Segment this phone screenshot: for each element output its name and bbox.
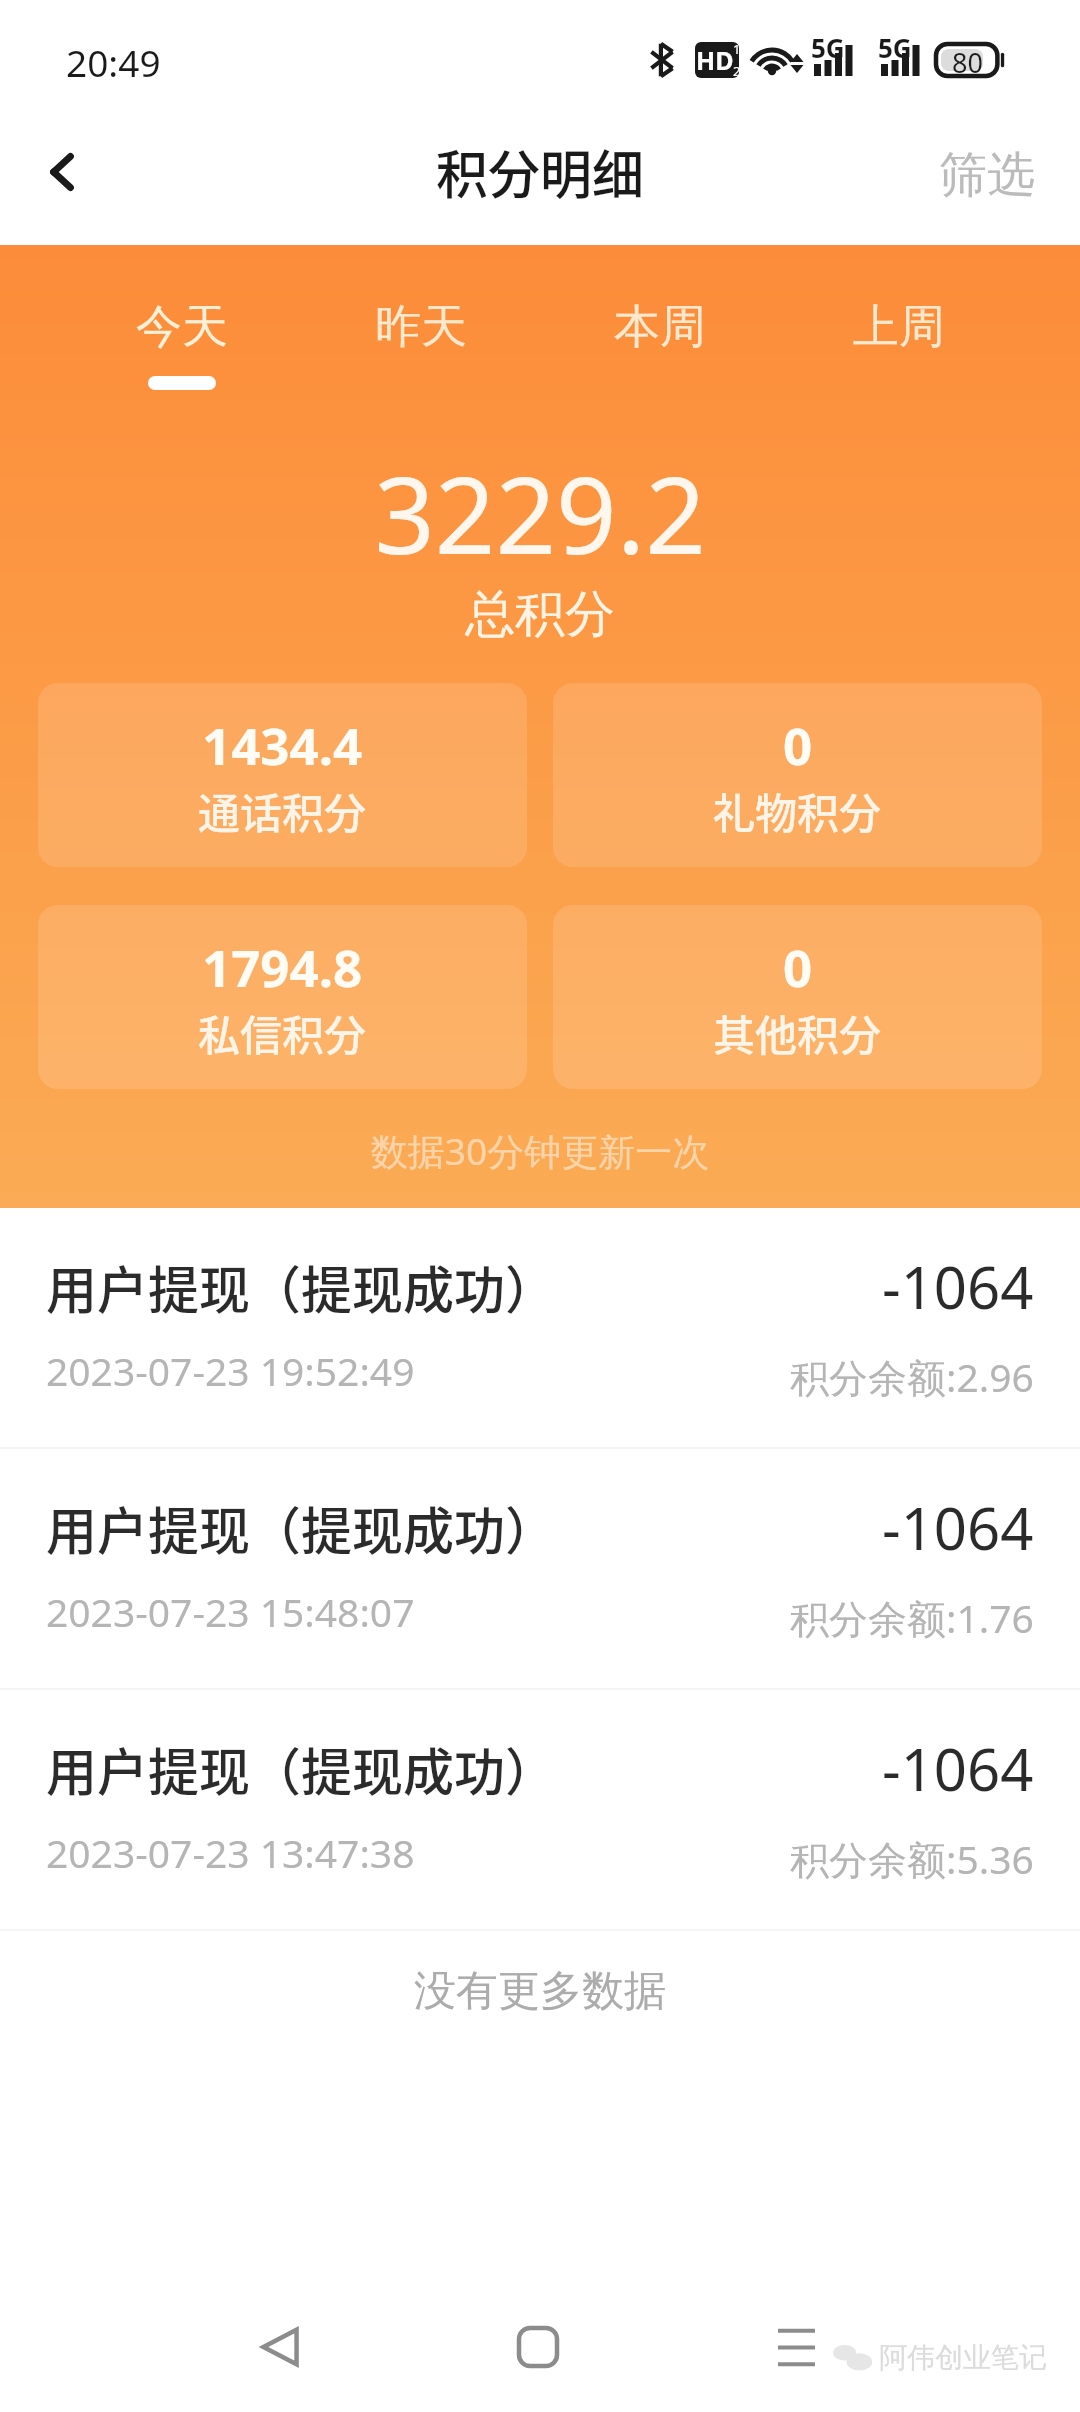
staticText: 2023-07-23 13:47:38 <box>46 1826 415 1879</box>
staticText: 通话积分 <box>198 780 367 841</box>
staticText: 20:49 <box>66 37 161 87</box>
staticText: -1064 <box>882 1488 1034 1567</box>
staticText: 私信积分 <box>198 1002 367 1063</box>
button[interactable]: 昨天 <box>301 298 540 376</box>
staticText: 积分余额:1.76 <box>790 1591 1034 1644</box>
staticText: 80 <box>952 44 983 76</box>
staticText: 0 <box>783 932 813 1001</box>
staticText: 用户提现（提现成功） <box>46 1491 557 1565</box>
button[interactable]: 用户提现（提现成功） <box>0 1208 1080 1449</box>
staticText: 积分余额:5.36 <box>790 1832 1034 1885</box>
button[interactable]: 筛选 <box>905 127 1080 223</box>
staticText: 积分余额:2.96 <box>790 1350 1034 1403</box>
button[interactable]: Home <box>483 2320 593 2374</box>
staticText: 用户提现（提现成功） <box>46 1250 557 1324</box>
staticText: 本周 <box>614 298 706 356</box>
staticText: -1064 <box>882 1247 1034 1326</box>
staticText: 昨天 <box>375 298 467 356</box>
staticText: 筛选 <box>939 145 1035 205</box>
staticText: 5G <box>811 30 845 62</box>
staticText: 2 <box>733 62 739 78</box>
staticText: 1794.8 <box>202 932 363 1001</box>
button[interactable]: 用户提现（提现成功） <box>0 1449 1080 1690</box>
staticText: -1064 <box>882 1729 1034 1808</box>
staticText: 2023-07-23 19:52:49 <box>46 1344 415 1397</box>
staticText: 1434.4 <box>202 710 363 779</box>
staticText: 上周 <box>853 298 945 356</box>
button[interactable]: 今天 <box>62 298 301 390</box>
staticText: 积分明细 <box>436 134 645 209</box>
staticText: 数据30分钟更新一次 <box>0 1125 1080 1176</box>
button[interactable]: Back <box>0 116 118 234</box>
staticText: 0 <box>783 710 813 779</box>
button[interactable]: 1794.8 <box>38 905 527 1089</box>
button[interactable]: 0 <box>553 683 1042 867</box>
staticText: 其他积分 <box>713 1002 882 1063</box>
button[interactable]: 0 <box>553 905 1042 1089</box>
staticText: 阿伟创业笔记 <box>879 2340 1047 2375</box>
staticText: 2023-07-23 15:48:07 <box>46 1585 415 1638</box>
staticText: 5G <box>878 30 912 62</box>
staticText: 礼物积分 <box>713 780 882 841</box>
staticText: 总积分 <box>0 583 1080 646</box>
button[interactable]: Recent apps <box>741 2320 851 2374</box>
button[interactable]: 1434.4 <box>38 683 527 867</box>
staticText: HD <box>696 43 734 77</box>
staticText: 3229.2 <box>0 441 1080 585</box>
staticText: 没有更多数据 <box>0 1965 1080 2018</box>
button[interactable]: 上周 <box>779 298 1018 376</box>
staticText: 1 <box>733 42 739 58</box>
button[interactable]: Back <box>225 2320 335 2374</box>
staticText: 用户提现（提现成功） <box>46 1732 557 1806</box>
button[interactable]: 本周 <box>540 298 779 376</box>
staticText: 今天 <box>136 298 228 356</box>
button[interactable]: 用户提现（提现成功） <box>0 1690 1080 1931</box>
